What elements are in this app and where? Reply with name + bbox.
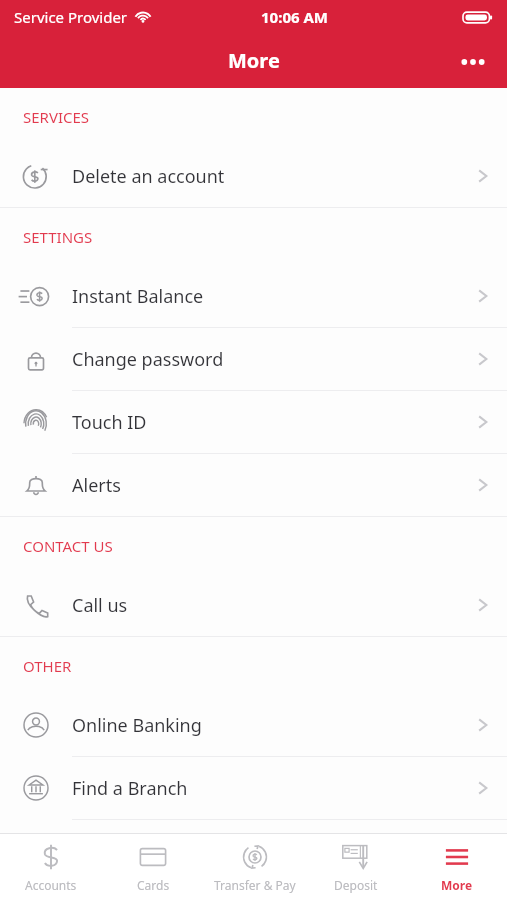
staticText: More xyxy=(228,47,280,74)
staticText: 10:06 AM xyxy=(261,7,328,27)
button[interactable]: Alerts xyxy=(0,454,507,516)
staticText: Online Banking xyxy=(72,713,202,738)
staticText: CONTACT US xyxy=(23,536,113,556)
staticText: OTHER xyxy=(23,656,72,676)
button[interactable]: Online Banking xyxy=(0,694,507,756)
staticText: Find a Branch xyxy=(72,776,188,801)
staticText: Service Provider xyxy=(14,7,128,27)
staticText: Touch ID xyxy=(72,410,147,435)
staticText: Delete an account xyxy=(72,164,225,189)
button[interactable]: Instant Balance xyxy=(0,265,507,327)
button[interactable]: Delete an account xyxy=(0,145,507,207)
button[interactable]: Touch ID xyxy=(0,391,507,453)
staticText: SERVICES xyxy=(23,107,90,127)
button[interactable]: Cards xyxy=(102,834,204,900)
staticText: More xyxy=(441,877,473,893)
staticText: Transfer & Pay xyxy=(214,877,296,893)
button[interactable]: Change password xyxy=(0,328,507,390)
staticText: Deposit xyxy=(334,877,378,893)
staticText: Instant Balance xyxy=(72,284,204,309)
staticText: Accounts xyxy=(25,877,77,893)
button[interactable]: Call us xyxy=(0,574,507,636)
staticText: Alerts xyxy=(72,473,121,498)
button[interactable]: More xyxy=(406,834,507,900)
button[interactable]: More options xyxy=(447,40,499,84)
button[interactable]: Accounts xyxy=(0,834,102,900)
button[interactable]: Deposit xyxy=(305,834,406,900)
staticText: SETTINGS xyxy=(23,227,93,247)
staticText: Change password xyxy=(72,347,224,372)
staticText: Call us xyxy=(72,593,128,618)
staticText: Cards xyxy=(137,877,170,893)
button[interactable]: Find a Branch xyxy=(0,757,507,819)
button[interactable]: Transfer & Pay xyxy=(204,834,305,900)
